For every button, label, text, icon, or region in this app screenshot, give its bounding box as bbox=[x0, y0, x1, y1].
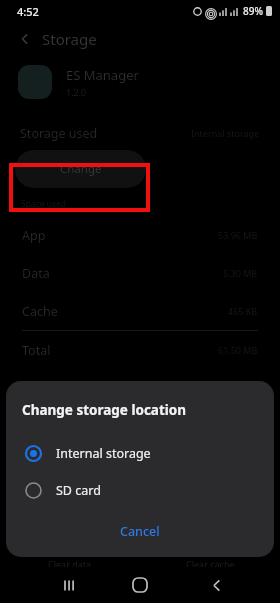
staticText: Space used bbox=[21, 198, 67, 210]
staticText: ES Manager bbox=[66, 66, 139, 84]
staticText: Storage bbox=[42, 29, 97, 49]
button[interactable]: Cache bbox=[0, 292, 280, 330]
staticText: Internal storage bbox=[191, 127, 260, 139]
staticText: 53.96 MB bbox=[218, 229, 258, 241]
staticText: Storage used bbox=[20, 125, 98, 142]
staticText: 465 KB bbox=[228, 305, 258, 317]
staticText: Change bbox=[60, 161, 102, 177]
button[interactable]: Back bbox=[0, 22, 280, 56]
staticText: SD card bbox=[56, 482, 101, 499]
staticText: Cache bbox=[22, 303, 58, 320]
button[interactable]: Cancel bbox=[6, 511, 274, 551]
button[interactable]: Recent apps bbox=[56, 571, 84, 599]
staticText: Clear cache bbox=[186, 558, 235, 570]
staticText: Change storage location bbox=[22, 401, 187, 419]
button[interactable]: SD card bbox=[6, 472, 274, 509]
staticText: Internal storage bbox=[56, 445, 151, 462]
staticText: 5.30 MB bbox=[223, 267, 258, 279]
staticText: Clear data bbox=[48, 558, 92, 570]
button[interactable]: Internal storage bbox=[6, 435, 274, 472]
button[interactable]: Total bbox=[0, 331, 280, 369]
staticText: 61.50 MB bbox=[218, 344, 258, 356]
button[interactable]: Back bbox=[202, 571, 230, 599]
staticText: 1.2.0 bbox=[66, 86, 87, 98]
staticText: 4:52 bbox=[17, 4, 39, 19]
button[interactable]: Home bbox=[126, 571, 154, 599]
button[interactable]: Change bbox=[15, 150, 146, 188]
staticText: Data bbox=[22, 265, 50, 282]
staticText: 89% bbox=[243, 4, 263, 18]
staticText: Total bbox=[22, 342, 51, 359]
staticText: App bbox=[22, 227, 46, 244]
button[interactable]: Back bbox=[14, 28, 36, 50]
staticText: Cancel bbox=[120, 523, 160, 540]
